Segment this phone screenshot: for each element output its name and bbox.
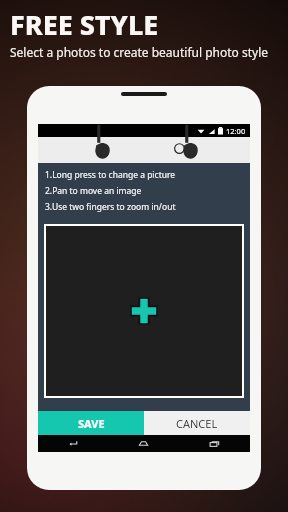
staticText: SAVE: [78, 416, 105, 431]
button[interactable]: Back: [38, 435, 108, 452]
button[interactable]: SAVE: [38, 411, 144, 435]
staticText: FREE STYLE: [10, 6, 159, 43]
button[interactable]: CANCEL: [144, 411, 250, 435]
button[interactable]: Add photo: [46, 226, 242, 396]
staticText: 2.Pan to move an image: [45, 185, 142, 197]
staticText: 12:00: [226, 126, 246, 136]
staticText: Select a photos to create beautiful phot…: [10, 44, 269, 60]
staticText: 1.Long press to change a picture: [45, 169, 176, 181]
staticText: 3.Use two fingers to zoom in/out: [45, 201, 176, 213]
staticText: CANCEL: [176, 416, 218, 431]
button[interactable]: Home: [108, 435, 179, 452]
button[interactable]: Recent apps: [179, 435, 250, 452]
